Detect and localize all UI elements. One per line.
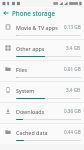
button[interactable]: Movie & TV apps — [0, 19, 84, 39]
staticText: 0.01 GB — [64, 66, 81, 72]
staticText: Movie & TV apps — [16, 24, 64, 31]
staticText: Files — [16, 66, 64, 73]
button[interactable]: Files — [0, 61, 84, 81]
staticText: 3.4 GB — [66, 45, 81, 51]
button[interactable]: Downloads — [0, 103, 84, 123]
staticText: Cached data — [16, 129, 64, 136]
button[interactable]: System — [0, 82, 84, 102]
staticText: 0.44 GB — [64, 129, 81, 135]
staticText: Other apps — [16, 45, 66, 52]
button[interactable]: Cached data — [0, 124, 84, 144]
staticText: 0.36 GB — [64, 108, 81, 114]
staticText: 0.13 GB — [64, 24, 81, 30]
staticText: Downloads — [16, 108, 64, 115]
staticText: 3.4 GB — [66, 87, 81, 93]
button[interactable]: Back — [0, 7, 12, 19]
button[interactable]: Other apps — [0, 40, 84, 60]
staticText: Phone storage — [12, 9, 56, 17]
staticText: System — [16, 87, 66, 94]
